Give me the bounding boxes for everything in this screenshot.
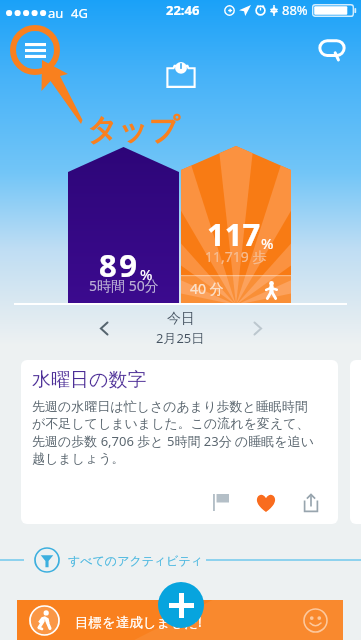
- staticText: 4G: [71, 4, 88, 22]
- staticText: 40 分: [190, 279, 224, 298]
- staticText: 117: [207, 213, 261, 255]
- staticText: 22:46: [166, 1, 200, 19]
- button[interactable]: Add: [158, 582, 204, 628]
- button[interactable]: Messages: [316, 33, 348, 65]
- staticText: 89: [99, 244, 140, 286]
- staticText: %: [261, 233, 274, 253]
- staticText: タップ: [87, 111, 180, 149]
- staticText: すべてのアクティビティ: [68, 553, 204, 568]
- button[interactable]: 水曜日の数字: [21, 360, 338, 524]
- staticText: 88%: [282, 1, 308, 19]
- button[interactable]: Previous day: [86, 310, 122, 346]
- staticText: 目標を達成しました!: [75, 613, 202, 631]
- button[interactable]: すべてのアクティビティ: [34, 547, 204, 573]
- staticText: 水曜日の数字: [32, 368, 147, 392]
- staticText: %: [140, 264, 153, 284]
- button[interactable]: Share: [288, 480, 333, 524]
- button[interactable]: Weight: [164, 57, 198, 91]
- staticText: au: [48, 4, 64, 22]
- staticText: 5時間 50分: [89, 276, 159, 295]
- staticText: 先週の水曜日は忙しさのあまり歩数と睡眠時間が不足してしまいました。この流れを変え…: [32, 398, 320, 467]
- staticText: 2月25日: [156, 329, 205, 347]
- button[interactable]: Menu: [10, 25, 60, 75]
- button[interactable]: Next day: [239, 310, 275, 346]
- staticText: 11,719 歩: [205, 247, 267, 266]
- staticText: 今日: [167, 310, 195, 328]
- button[interactable]: 目標を達成しました!: [17, 600, 343, 640]
- button[interactable]: Like: [243, 480, 288, 524]
- button[interactable]: Flag: [198, 480, 243, 524]
